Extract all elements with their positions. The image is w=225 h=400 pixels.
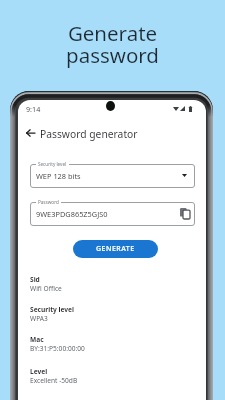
button[interactable]: GENERATE bbox=[73, 240, 158, 258]
staticText: BY:31:P5:00:00:00 bbox=[30, 344, 85, 353]
staticText: Security level bbox=[38, 161, 67, 167]
button[interactable]: WEP 128 bits bbox=[30, 164, 195, 188]
staticText: Security level bbox=[30, 305, 74, 314]
button[interactable]: 9WE3PDG865Z5GJS0 bbox=[30, 202, 195, 226]
staticText: WPA3 bbox=[30, 314, 48, 323]
staticText: Level bbox=[30, 367, 48, 376]
staticText: Password generator bbox=[40, 127, 138, 141]
staticText: Mac bbox=[30, 335, 44, 344]
staticText: 9:14 bbox=[26, 104, 41, 114]
staticText: GENERATE bbox=[96, 244, 135, 254]
staticText: password bbox=[0, 41, 225, 69]
staticText: 9WE3PDG865Z5GJS0 bbox=[36, 209, 108, 219]
button[interactable]: Copy password bbox=[180, 208, 190, 219]
staticText: Sid bbox=[30, 275, 40, 284]
button[interactable]: Back bbox=[20, 123, 40, 143]
staticText: Wifi Office bbox=[30, 284, 62, 293]
staticText: Password bbox=[38, 199, 59, 205]
staticText: WEP 128 bits bbox=[36, 171, 81, 181]
staticText: Excellent -50dB bbox=[30, 376, 78, 385]
staticText: Generate bbox=[0, 19, 225, 47]
